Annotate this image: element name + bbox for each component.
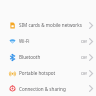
staticText: SIM cards & mobile networks	[19, 22, 82, 28]
staticText: Bluetooth	[19, 54, 41, 60]
button[interactable]: SIM cards & mobile networks	[0, 17, 96, 33]
staticText: Portable hotspot	[19, 70, 56, 76]
staticText: Off	[81, 55, 87, 60]
staticText: Wi-Fi	[19, 38, 30, 44]
staticText: Off	[81, 39, 87, 44]
staticText: Connection & sharing	[19, 86, 66, 92]
button[interactable]: Portable hotspot	[0, 65, 96, 81]
button[interactable]: Wi-Fi	[0, 33, 96, 49]
button[interactable]: Connection & sharing	[0, 81, 96, 96]
staticText: Off	[81, 71, 87, 76]
button[interactable]: Bluetooth	[0, 49, 96, 65]
